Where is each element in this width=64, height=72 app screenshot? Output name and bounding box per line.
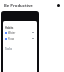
staticText: Yoga (8, 37, 14, 40)
button[interactable]: Account (57, 4, 60, 7)
staticText: Tasks (5, 47, 13, 51)
button[interactable]: Yoga (5, 37, 34, 40)
staticText: Water (8, 31, 16, 34)
button[interactable]: Water (5, 31, 34, 34)
staticText: Be Productive (4, 3, 33, 9)
staticText: Habits (5, 26, 14, 30)
